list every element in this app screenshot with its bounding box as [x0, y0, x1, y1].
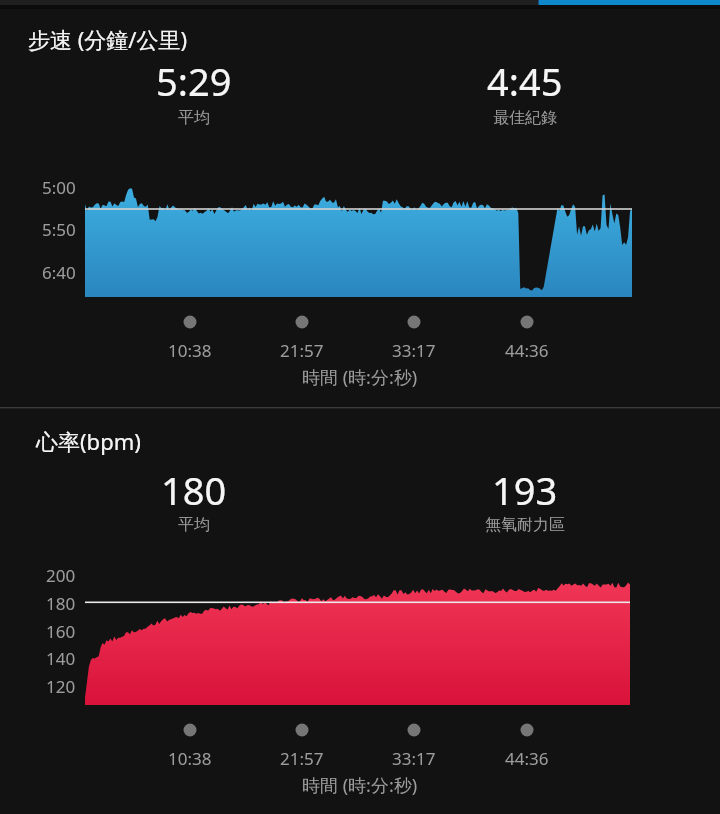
- button[interactable]: Pace and heart rate charts: [0, 0, 720, 814]
